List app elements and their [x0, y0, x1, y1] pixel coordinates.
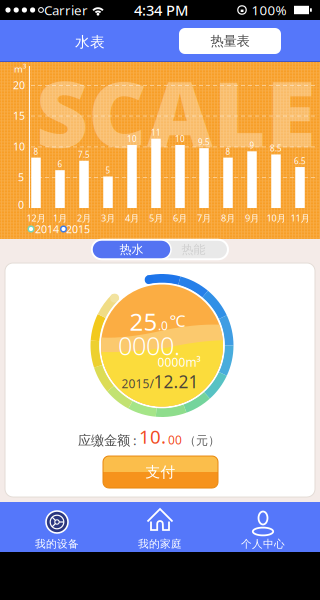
staticText: 5 — [105, 165, 110, 176]
button[interactable]: 热能 — [92, 240, 228, 259]
button[interactable]: 我的设备 — [7, 502, 107, 552]
button[interactable]: 热量表 — [179, 28, 281, 54]
staticText: 11 — [151, 127, 161, 138]
button[interactable]: 支付 — [103, 456, 218, 488]
staticText: 2015/ — [121, 375, 153, 391]
staticText: ℃ — [169, 310, 185, 331]
button[interactable]: 热水 — [92, 240, 171, 259]
staticText: 8 — [225, 146, 230, 157]
staticText: 热水 — [119, 242, 143, 257]
staticText: 10月 — [266, 212, 285, 224]
staticText: 2月 — [77, 212, 91, 224]
staticText: 00 — [168, 432, 182, 448]
staticText: 2014 — [35, 222, 59, 236]
staticText: 12月 — [26, 212, 45, 224]
staticText: 0 — [18, 197, 24, 212]
staticText: 4月 — [125, 212, 139, 224]
staticText: 2015 — [66, 222, 90, 236]
staticText: 10 — [13, 139, 25, 153]
staticText: SCALE — [36, 52, 316, 172]
staticText: 7月 — [197, 212, 211, 224]
staticText: m³ — [14, 63, 26, 75]
staticText: 热能 — [181, 242, 205, 257]
staticText: 3月 — [101, 212, 115, 224]
staticText: 9.5 — [198, 137, 210, 147]
staticText: 8.5 — [270, 143, 282, 154]
staticText: 8月 — [221, 212, 235, 224]
staticText: 支付 — [145, 463, 175, 481]
staticText: 我的设备 — [35, 537, 79, 550]
staticText: .0 — [158, 317, 168, 333]
staticText: 100% — [251, 1, 286, 19]
staticText: 7.5 — [78, 149, 90, 160]
staticText: 25 — [129, 306, 157, 337]
staticText: 1月 — [53, 212, 67, 224]
staticText: （元） — [184, 433, 220, 448]
staticText: 6 — [57, 159, 62, 169]
staticText: 9 — [249, 140, 254, 151]
staticText: 个人中心 — [241, 537, 285, 550]
staticText: 10 — [127, 134, 137, 144]
staticText: 11月 — [290, 212, 309, 224]
staticText: 10 — [175, 134, 185, 144]
staticText: 20 — [13, 78, 25, 92]
staticText: 6.5 — [294, 156, 306, 166]
staticText: 0000m³ — [157, 354, 200, 370]
staticText: 4:34 PM — [134, 0, 188, 20]
staticText: 10. — [139, 424, 166, 449]
staticText: 9月 — [245, 212, 259, 224]
staticText: 5 — [18, 170, 24, 184]
staticText: 热量表 — [210, 33, 249, 49]
button[interactable]: 我的家庭 — [110, 502, 210, 552]
staticText: 12.21 — [153, 370, 198, 393]
staticText: 8 — [33, 146, 38, 157]
staticText: 15 — [13, 108, 25, 123]
staticText: 0000. — [118, 329, 180, 362]
staticText: Carrier — [44, 1, 88, 19]
staticText: 5月 — [149, 212, 163, 224]
button[interactable]: 个人中心 — [213, 502, 313, 552]
staticText: 6月 — [173, 212, 187, 224]
staticText: 我的家庭 — [138, 537, 182, 550]
staticText: 水表 — [75, 33, 105, 51]
staticText: 应缴金额 : — [78, 431, 137, 449]
